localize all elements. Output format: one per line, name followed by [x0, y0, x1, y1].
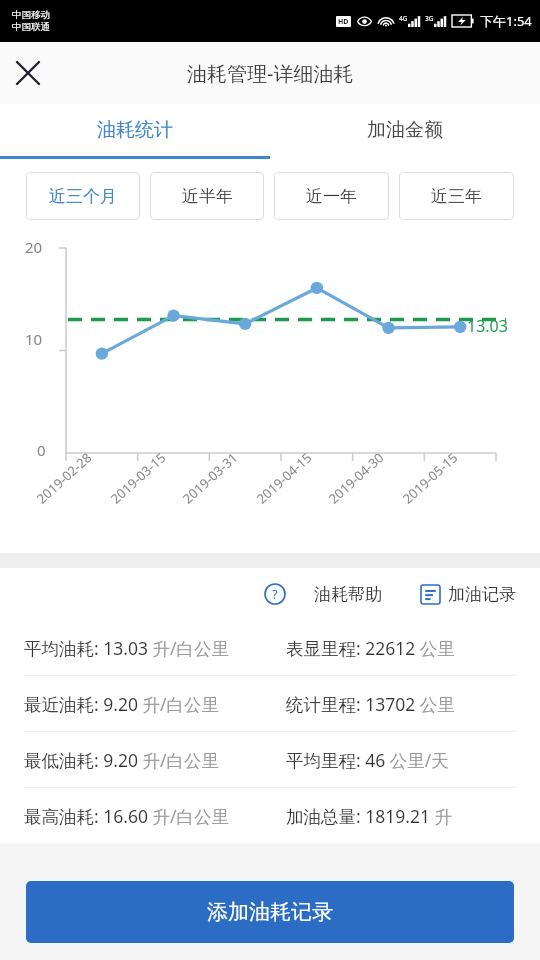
button[interactable]: 添加油耗记录 [26, 881, 514, 943]
button[interactable]: Close [0, 45, 56, 101]
button[interactable]: 近一年 [274, 172, 389, 220]
staticText: 下午1:54 [480, 12, 532, 30]
button[interactable]: 近三年 [399, 172, 514, 220]
staticText: 添加油耗记录 [207, 899, 333, 925]
staticText: 2019-04-30 [325, 449, 387, 507]
staticText: 最高油耗: 16.60 升/白公里 [24, 804, 230, 828]
staticText: 统计里程: 13702 公里 [286, 692, 455, 716]
staticText: 2019-05-15 [399, 449, 461, 507]
staticText: 最低油耗: 9.20 升/白公里 [24, 748, 220, 772]
staticText: 近三年 [431, 186, 482, 207]
staticText: 表显里程: 22612 公里 [286, 636, 455, 660]
staticText: 平均油耗: 13.03 升/白公里 [24, 636, 230, 660]
staticText: 近半年 [182, 186, 233, 207]
button[interactable]: 近半年 [150, 172, 264, 220]
staticText: 近三个月 [49, 186, 117, 207]
staticText: 近一年 [306, 186, 357, 207]
staticText: 2019-03-31 [179, 449, 241, 507]
staticText: 中国联通 [12, 21, 50, 33]
staticText: 2019-02-28 [33, 449, 95, 507]
staticText: 0 [37, 440, 46, 460]
staticText: 油耗统计 [97, 118, 173, 142]
staticText: 油耗帮助 [314, 584, 382, 605]
staticText: 加油金额 [367, 118, 443, 142]
staticText: 2019-04-15 [253, 449, 315, 507]
staticText: 2019-03-15 [107, 449, 169, 507]
staticText: 3G [425, 14, 434, 23]
staticText: HD [338, 17, 349, 27]
button[interactable]: 近三个月 [26, 172, 140, 220]
button[interactable]: 油耗统计 [0, 104, 270, 156]
staticText: 平均里程: 46 公里/天 [286, 748, 449, 772]
staticText: 4G [399, 14, 408, 23]
staticText: 中国移动 [12, 9, 50, 21]
staticText: ? [272, 585, 278, 603]
staticText: 10 [25, 329, 43, 349]
button[interactable]: 加油金额 [270, 104, 540, 156]
staticText: 油耗管理-详细油耗 [187, 60, 354, 87]
staticText: 加油总量: 1819.21 升 [286, 804, 453, 828]
staticText: 最近油耗: 9.20 升/白公里 [24, 692, 220, 716]
staticText: 13.03 [467, 315, 508, 337]
staticText: 20 [25, 237, 43, 257]
button[interactable]: ? [258, 577, 388, 611]
staticText: 加油记录 [448, 584, 516, 605]
button[interactable]: 加油记录 [414, 578, 522, 611]
